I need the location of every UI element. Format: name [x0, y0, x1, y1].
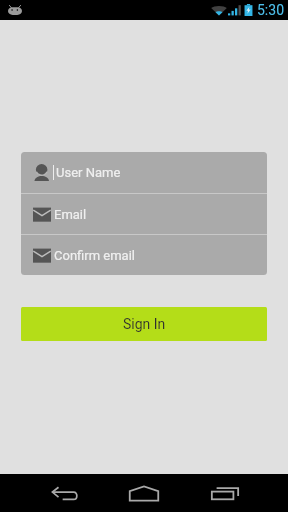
staticText: User Name — [56, 165, 121, 180]
button[interactable]: Confirm email — [21, 235, 267, 275]
button[interactable]: Home — [106, 474, 182, 512]
button[interactable]: Email — [21, 194, 267, 234]
button[interactable]: User Name — [21, 152, 267, 193]
button[interactable]: Sign In — [21, 307, 267, 341]
staticText: Confirm email — [54, 248, 135, 263]
staticText: Email — [54, 207, 87, 222]
staticText: Sign In — [123, 316, 166, 332]
staticText: 5:30 — [257, 2, 284, 18]
button[interactable]: Recent apps — [187, 474, 263, 512]
button[interactable]: Back — [27, 475, 103, 512]
